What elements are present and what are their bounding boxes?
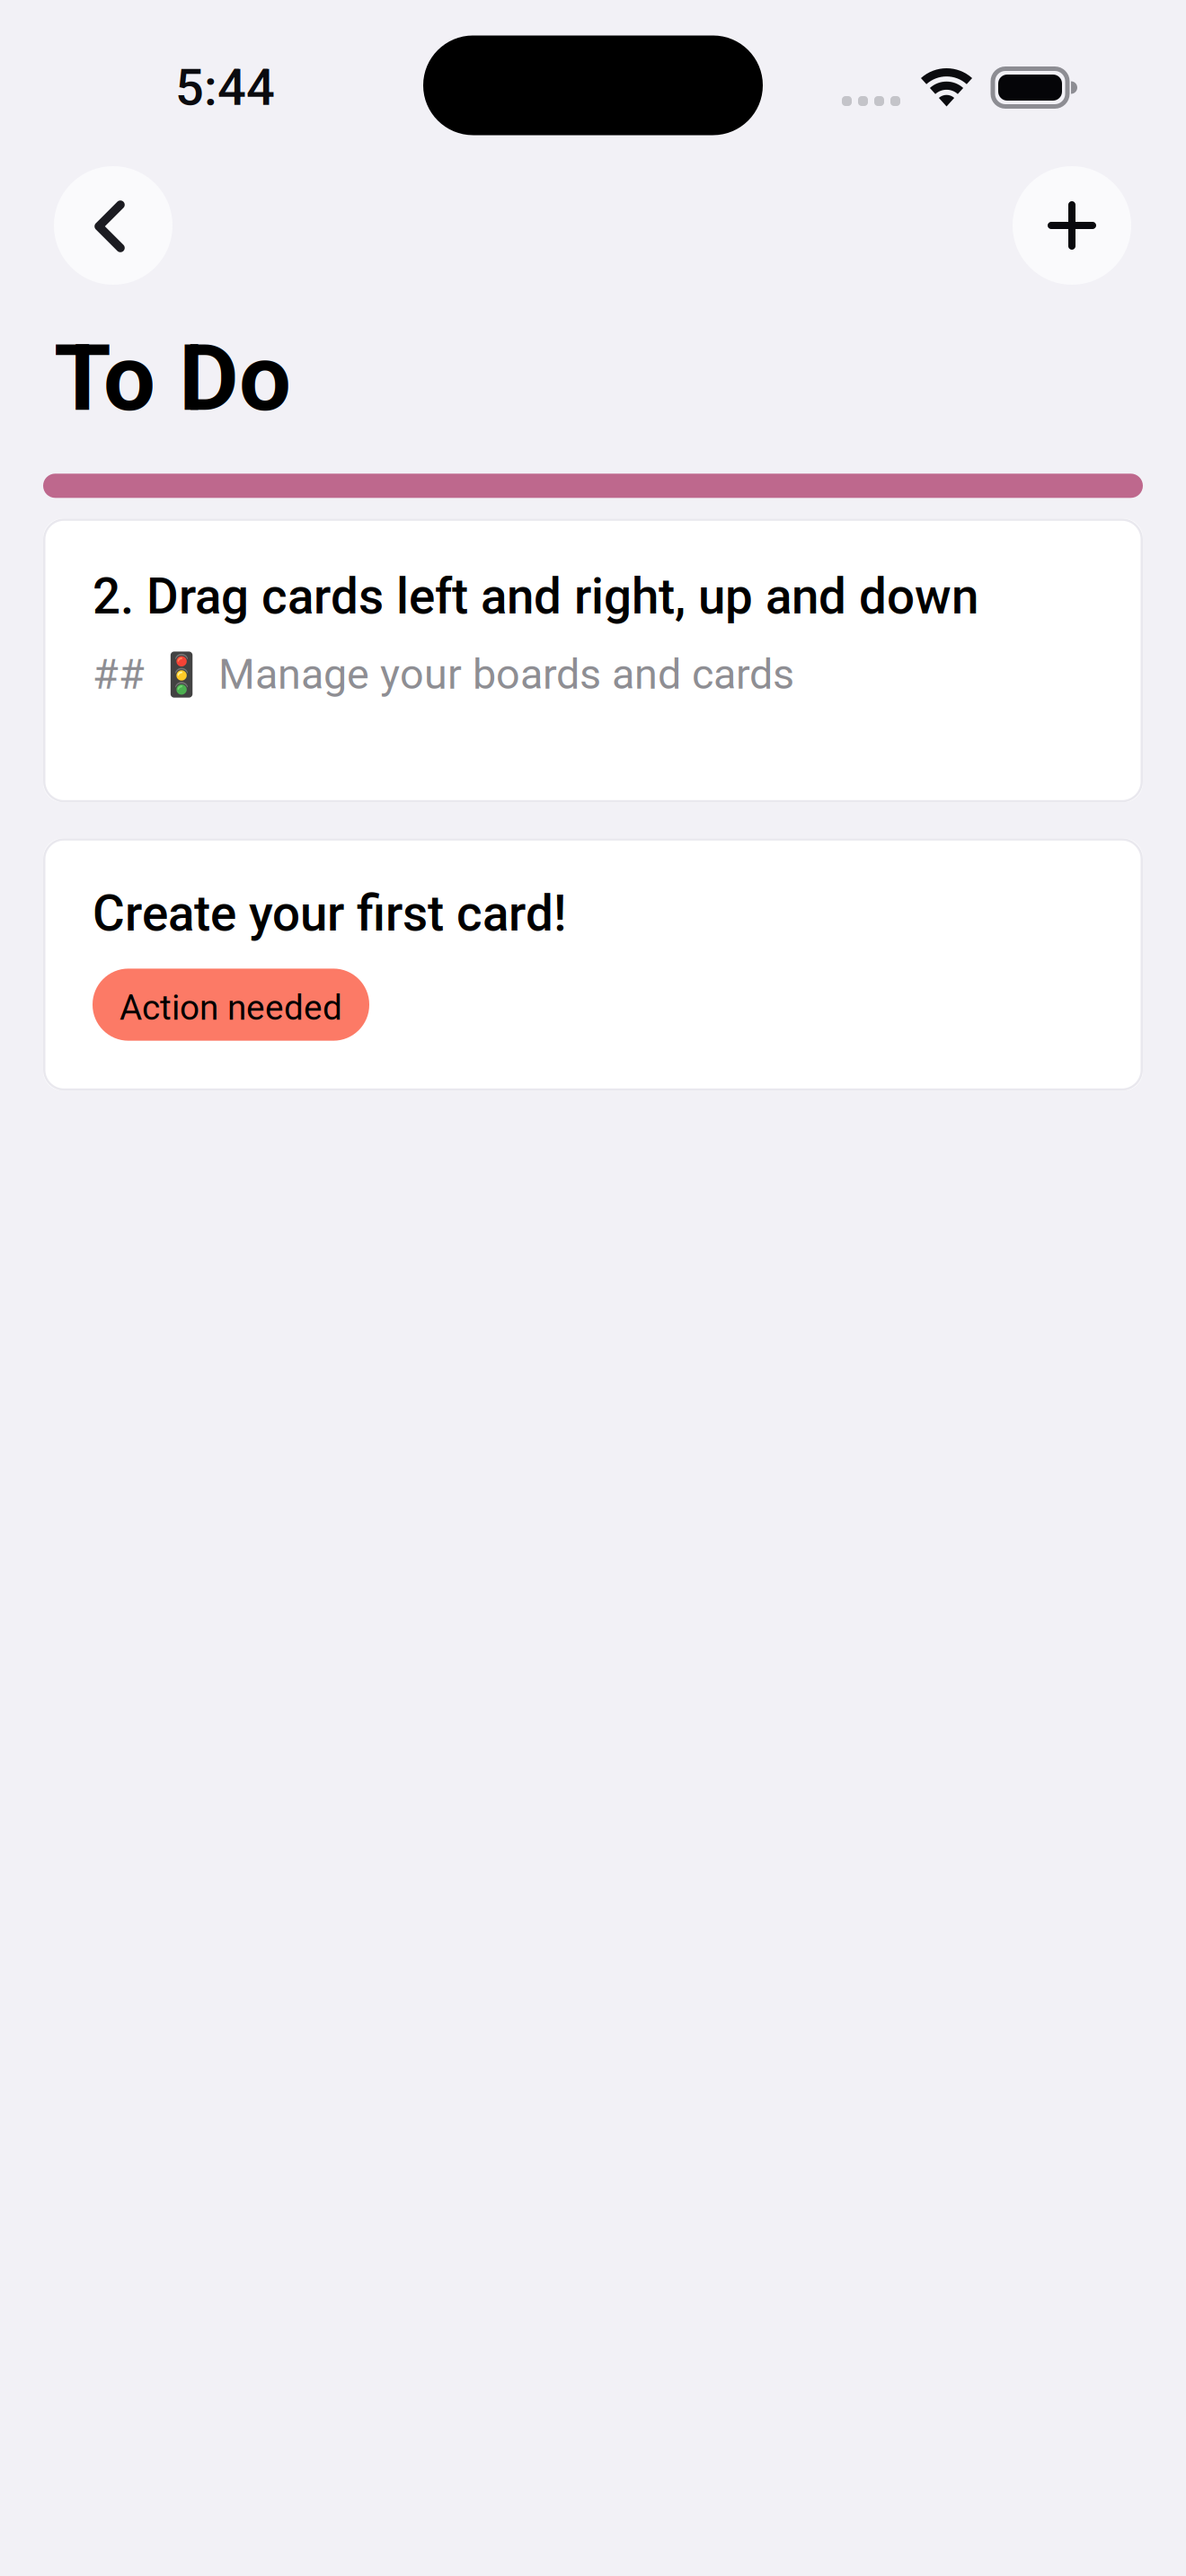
button[interactable]: Add card xyxy=(1013,166,1131,285)
staticText: ## 🚦 Manage your boards and cards xyxy=(93,650,794,699)
staticText: Create your first card! xyxy=(93,885,566,943)
staticText: Action needed xyxy=(119,987,342,1028)
button[interactable]: Create your first card! xyxy=(43,838,1143,1091)
staticText: To Do xyxy=(54,324,291,432)
button[interactable]: 2. Drag cards left and right, up and dow… xyxy=(43,519,1143,802)
button[interactable]: Back xyxy=(54,166,173,285)
staticText: 2. Drag cards left and right, up and dow… xyxy=(93,568,978,625)
staticText: 5:44 xyxy=(175,58,275,117)
